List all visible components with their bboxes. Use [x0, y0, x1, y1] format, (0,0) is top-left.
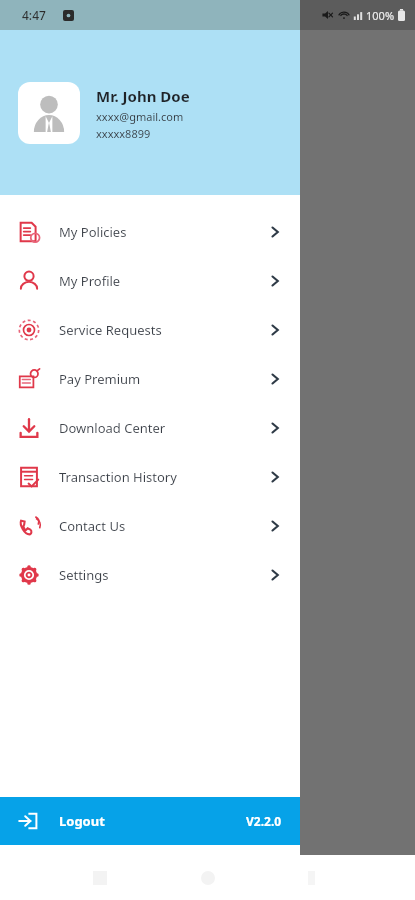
staticText: Settings	[59, 566, 109, 584]
staticText: xxxxx8899	[96, 126, 151, 141]
staticText: 4:47	[22, 7, 46, 23]
button[interactable]: Pay Premium	[0, 354, 300, 403]
button[interactable]: My Profile	[0, 256, 300, 305]
button[interactable]: Transaction History	[0, 452, 300, 501]
button[interactable]: Service Requests	[0, 305, 300, 354]
button[interactable]: My Policies	[0, 207, 300, 256]
button[interactable]: Logout	[0, 797, 300, 845]
staticText: xxxx@gmail.com	[96, 109, 184, 124]
staticText: Contact Us	[59, 517, 126, 535]
staticText: V2.2.0	[246, 813, 282, 829]
staticText: Service Requests	[59, 321, 162, 339]
staticText: My Profile	[59, 272, 121, 290]
staticText: Logout	[59, 812, 105, 830]
button[interactable]: Settings	[0, 550, 300, 599]
button[interactable]: Contact Us	[0, 501, 300, 550]
staticText: Transaction History	[59, 468, 177, 486]
staticText: My Policies	[59, 223, 127, 241]
button[interactable]: Pay Now	[150, 388, 393, 430]
staticText: 100%	[366, 8, 395, 23]
staticText: Mr. John Doe	[96, 86, 190, 106]
staticText: Download Center	[59, 419, 166, 437]
staticText: Pay Premium	[59, 370, 141, 388]
button[interactable]: Download Center	[0, 403, 300, 452]
